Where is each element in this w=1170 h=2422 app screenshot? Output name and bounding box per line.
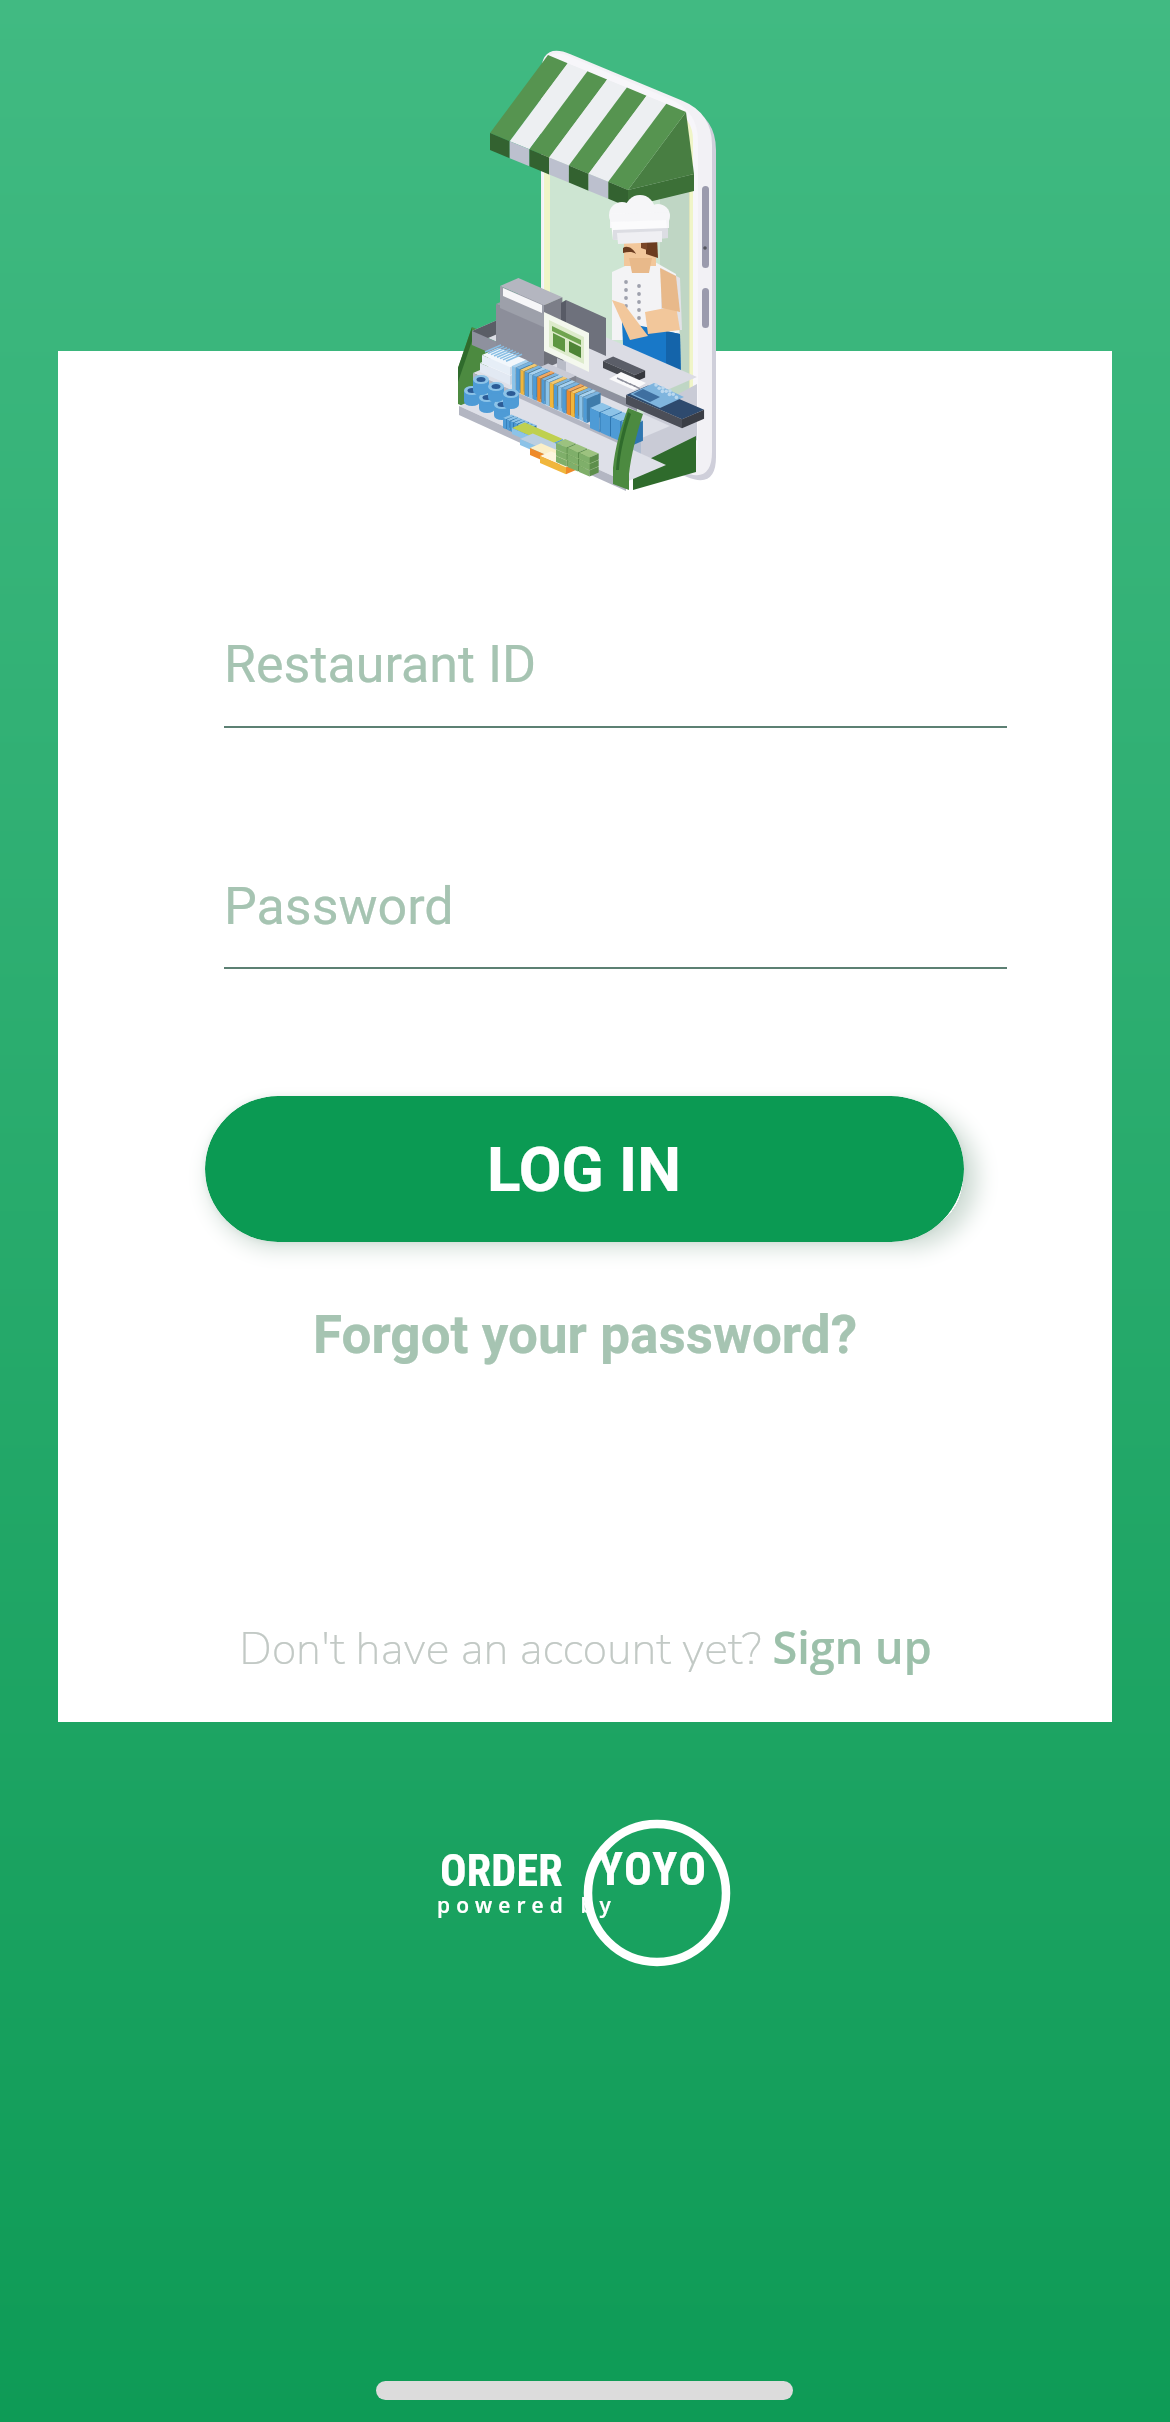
staticText: LOG IN (487, 1133, 682, 1206)
button[interactable]: Password (224, 862, 1007, 972)
staticText: powered by (437, 1891, 617, 1920)
staticText: ORDER (440, 1845, 563, 1897)
button[interactable]: Forgot your password? (185, 1292, 985, 1378)
button[interactable]: Don't have an account yet? Sign up (140, 1608, 1030, 1688)
staticText: Don't have an account yet? Sign up (239, 1616, 932, 1680)
staticText: Restaurant ID (224, 634, 537, 695)
button[interactable]: Restaurant ID (224, 620, 1007, 730)
staticText: Forgot your password? (313, 1304, 858, 1366)
staticText: Password (224, 876, 454, 937)
button[interactable]: LOG IN (205, 1096, 964, 1242)
other: OrderYOYO logo (430, 1818, 740, 1978)
staticText: YOYO (598, 1842, 708, 1896)
